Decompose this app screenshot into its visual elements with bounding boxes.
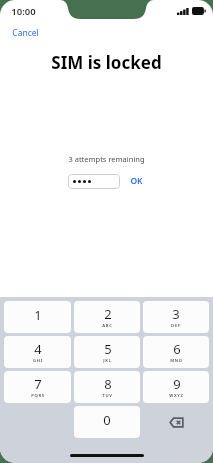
staticText: 2 <box>104 305 112 323</box>
button[interactable] <box>68 174 120 189</box>
staticText: 8 <box>104 375 112 393</box>
staticText: PQRS <box>31 393 45 399</box>
button[interactable]: 0 <box>74 406 140 438</box>
button[interactable]: 2 <box>74 301 140 333</box>
staticText: TUV <box>102 393 113 399</box>
button[interactable]: 8 <box>74 371 140 403</box>
staticText: MNO <box>170 358 183 364</box>
staticText: 4 <box>34 340 42 358</box>
button[interactable]: 3 <box>143 301 209 333</box>
staticText: 3 <box>172 305 180 323</box>
staticText: OK <box>130 175 143 187</box>
button[interactable]: 7 <box>4 371 71 403</box>
staticText: ABC <box>102 323 113 329</box>
button[interactable]: Delete <box>143 406 209 438</box>
staticText: 9 <box>173 375 181 393</box>
button[interactable]: 5 <box>74 336 140 368</box>
button[interactable]: 6 <box>143 336 209 368</box>
staticText: WXYZ <box>169 393 184 399</box>
staticText: Cancel <box>12 27 39 39</box>
staticText: GHI <box>33 358 43 364</box>
button[interactable]: 4 <box>4 336 71 368</box>
button[interactable]: 9 <box>143 371 209 403</box>
staticText: DEF <box>171 323 181 329</box>
staticText: 0 <box>103 411 111 429</box>
staticText: 3 attempts remaining <box>68 154 145 164</box>
button[interactable]: OK <box>127 173 146 189</box>
button[interactable]: 1 <box>4 301 71 333</box>
staticText: SIM is locked <box>51 51 162 74</box>
staticText: JKL <box>103 358 112 364</box>
staticText: 7 <box>34 375 42 393</box>
button[interactable]: Cancel <box>0 24 51 42</box>
staticText: 5 <box>104 340 112 358</box>
staticText: 6 <box>173 340 181 358</box>
staticText: 10:00 <box>11 5 36 18</box>
staticText: 1 <box>34 306 42 324</box>
